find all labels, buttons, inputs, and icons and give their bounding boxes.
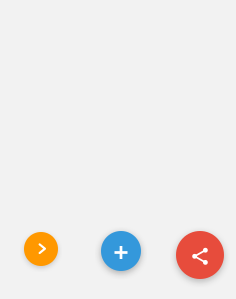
button[interactable]: Next — [24, 232, 58, 266]
button[interactable]: Add — [101, 231, 141, 271]
button[interactable]: Share — [176, 231, 224, 279]
